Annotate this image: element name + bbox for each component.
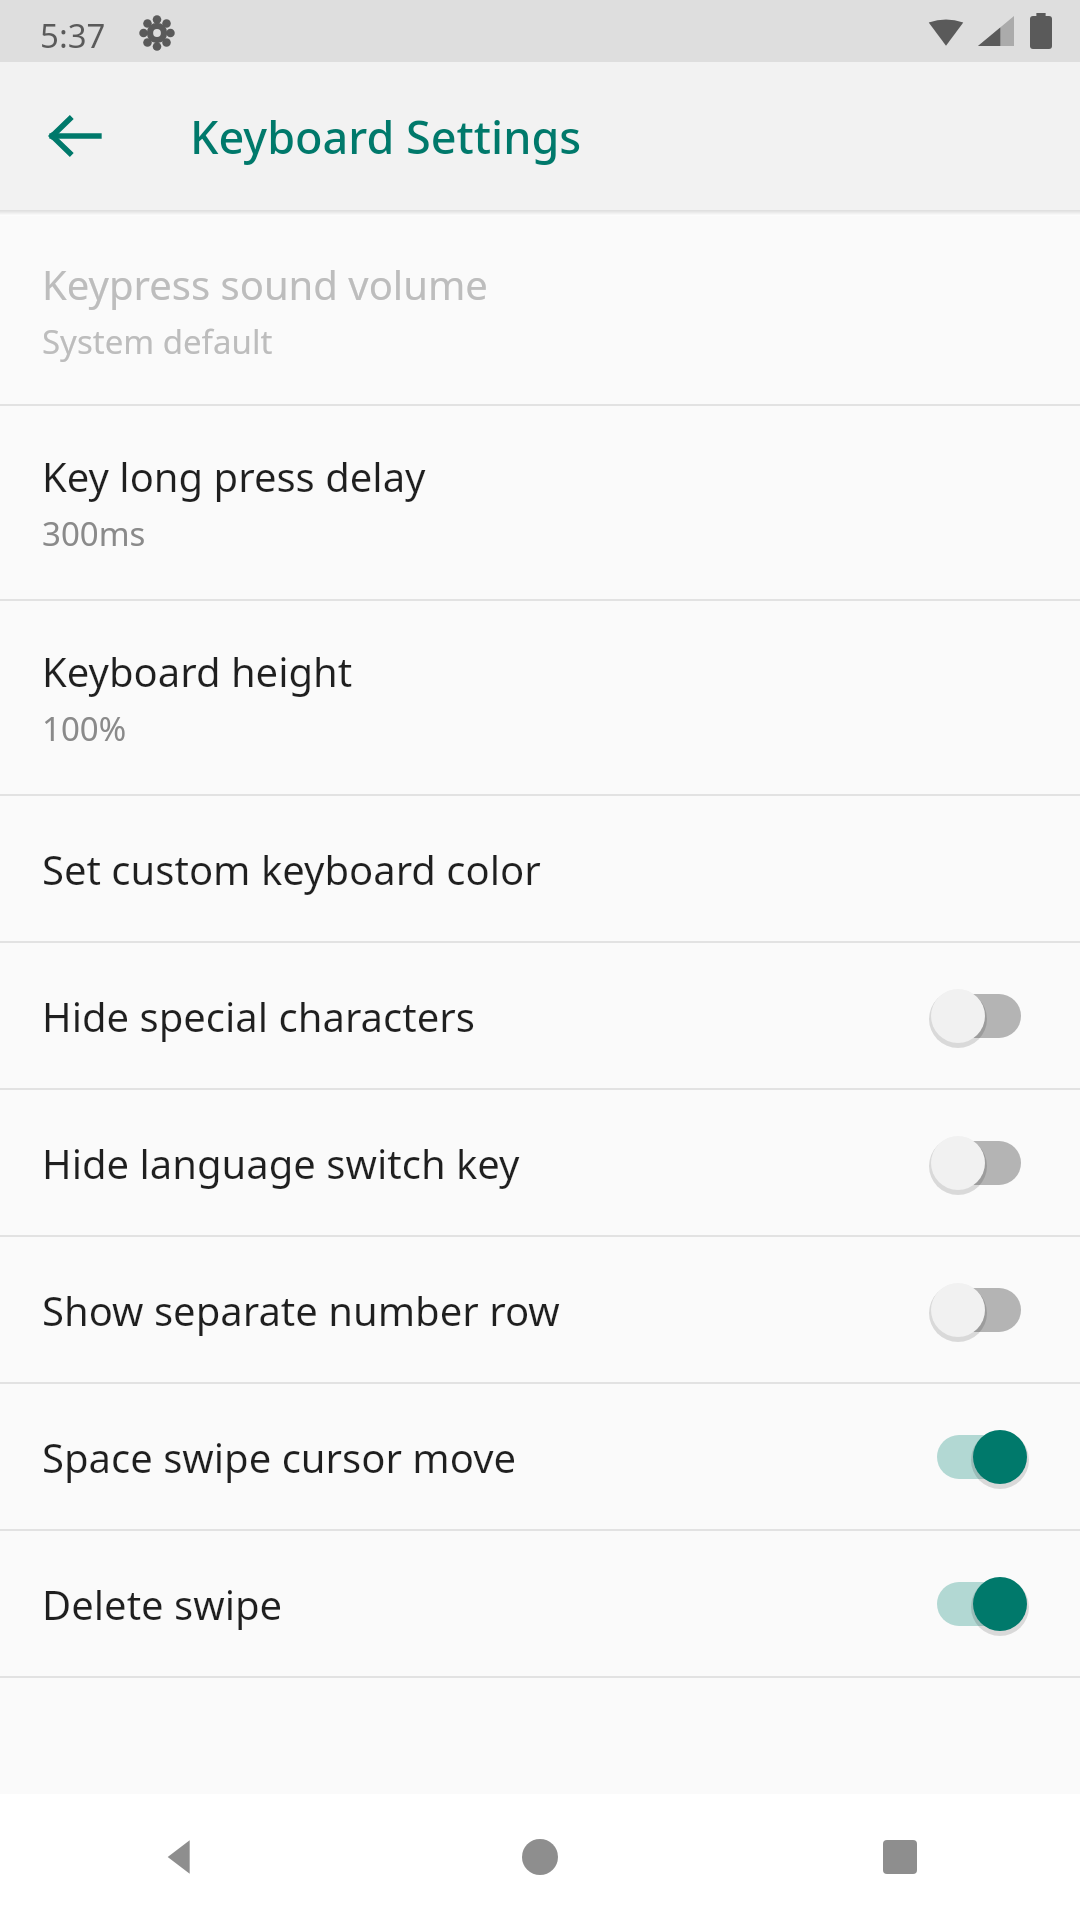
staticText: Hide language switch key [42, 1136, 924, 1190]
staticText: Keyboard Settings [190, 106, 582, 167]
staticText: System default [42, 319, 273, 364]
staticText: 300ms [42, 511, 146, 556]
button[interactable]: Hide special characters [0, 943, 1080, 1088]
button[interactable]: Home [360, 1794, 720, 1920]
button[interactable]: Keypress sound volume [0, 216, 1080, 404]
button[interactable]: Hide language switch key [0, 1090, 1080, 1235]
button[interactable]: Back [0, 1794, 360, 1920]
staticText: Show separate number row [42, 1283, 924, 1337]
button[interactable]: Keyboard height [0, 601, 1080, 794]
staticText: Delete swipe [42, 1577, 924, 1631]
button[interactable]: Recent apps [720, 1794, 1080, 1920]
button[interactable]: Key long press delay [0, 406, 1080, 599]
staticText: Keyboard height [42, 644, 353, 698]
staticText: Space swipe cursor move [42, 1430, 924, 1484]
staticText: 100% [42, 706, 127, 751]
staticText: Set custom keyboard color [42, 842, 1080, 896]
button[interactable]: Set custom keyboard color [0, 796, 1080, 941]
staticText: Keypress sound volume [42, 257, 488, 311]
staticText: Key long press delay [42, 449, 426, 503]
staticText: 5:37 [40, 13, 106, 58]
button[interactable]: Back [32, 93, 118, 179]
staticText: Hide special characters [42, 989, 924, 1043]
button[interactable]: Space swipe cursor move [0, 1384, 1080, 1529]
button[interactable]: Show separate number row [0, 1237, 1080, 1382]
button[interactable]: Delete swipe [0, 1531, 1080, 1676]
